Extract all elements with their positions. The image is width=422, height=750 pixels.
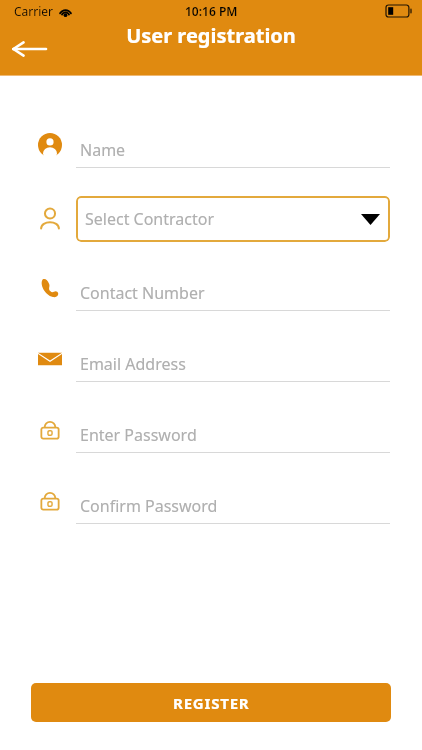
button[interactable]: Contact Number: [76, 274, 390, 311]
staticText: Enter Password: [80, 424, 197, 446]
staticText: 10:16 PM: [185, 3, 238, 19]
button[interactable]: Enter Password: [76, 416, 390, 453]
staticText: Name: [80, 139, 126, 161]
button[interactable]: Email Address: [76, 345, 390, 382]
staticText: Email Address: [80, 353, 186, 375]
button[interactable]: Confirm Password: [76, 487, 390, 524]
staticText: Confirm Password: [80, 495, 218, 517]
button[interactable]: REGISTER: [31, 683, 391, 722]
staticText: Select Contractor: [85, 208, 215, 230]
staticText: User registration: [0, 22, 422, 49]
button[interactable]: Back: [6, 26, 52, 72]
staticText: REGISTER: [173, 693, 250, 713]
staticText: Carrier: [14, 3, 54, 19]
staticText: Contact Number: [80, 282, 205, 304]
button[interactable]: Name: [76, 131, 390, 168]
button[interactable]: Select Contractor: [76, 196, 390, 242]
